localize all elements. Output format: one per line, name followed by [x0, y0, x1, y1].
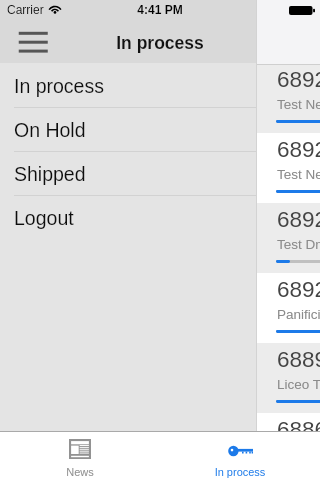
staticText: Shipped — [14, 163, 86, 185]
staticText: 68924 — [277, 277, 320, 302]
button[interactable]: News — [0, 431, 160, 480]
staticText: 4:41 PM — [0, 3, 320, 16]
button[interactable]: 68924 — [0, 273, 320, 343]
button[interactable]: In process — [0, 64, 257, 108]
button[interactable]: 68923 — [0, 203, 320, 273]
button[interactable]: In process — [160, 431, 320, 480]
button[interactable]: 68895 — [0, 343, 320, 413]
button[interactable]: 68922 — [0, 133, 320, 203]
staticText: Logout — [14, 207, 74, 229]
staticText: 68922 — [277, 137, 320, 162]
staticText: Test Dmo — [277, 237, 320, 252]
button[interactable]: Open navigation menu — [11, 23, 47, 57]
staticText: Panificio Rossi — [277, 307, 320, 322]
staticText: In process — [14, 75, 104, 97]
staticText: 68895 — [277, 347, 320, 372]
staticText: Test Newspaper — [277, 167, 320, 182]
staticText: In process — [160, 466, 320, 478]
staticText: 68921 — [277, 67, 320, 92]
button[interactable]: On Hold — [0, 108, 257, 152]
button[interactable]: Logout — [0, 196, 257, 240]
button[interactable]: Shipped — [0, 152, 257, 196]
staticText: In process — [0, 33, 320, 53]
staticText: Carrier — [7, 3, 44, 16]
button[interactable]: 68860 — [0, 413, 320, 480]
staticText: 68860 — [277, 417, 320, 442]
staticText: News — [0, 466, 160, 478]
staticText: 68923 — [277, 207, 320, 232]
staticText: Test Newspaper — [277, 97, 320, 112]
button[interactable]: 68921 — [0, 63, 320, 133]
staticText: Liceo Testa — [277, 377, 320, 392]
staticText: On Hold — [14, 119, 86, 141]
